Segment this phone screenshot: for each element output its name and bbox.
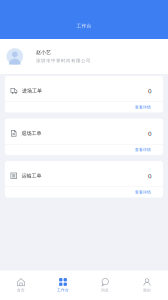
staticText: 我的	[143, 288, 151, 292]
staticText: 消息	[101, 288, 109, 292]
staticText: 深圳市中誉时尚有限公司	[36, 58, 91, 64]
staticText: 查看详情	[135, 105, 151, 110]
button[interactable]: 运输工单	[5, 161, 163, 197]
staticText: 工作台	[57, 288, 69, 292]
staticText: 运输工单	[21, 173, 41, 179]
button[interactable]: 消息	[84, 270, 126, 300]
staticText: 0	[148, 172, 152, 180]
staticText: 赵小艺	[36, 49, 51, 55]
staticText: 0	[148, 87, 152, 95]
button[interactable]: 我的	[126, 270, 168, 300]
button[interactable]: 退场工单	[5, 118, 163, 155]
button[interactable]: 工作台	[42, 270, 84, 300]
staticText: 工作台	[76, 23, 91, 29]
staticText: 查看详情	[135, 190, 151, 195]
staticText: 查看详情	[135, 147, 151, 152]
button[interactable]: 进场工单	[5, 76, 163, 112]
staticText: 退场工单	[21, 130, 41, 136]
staticText: 进场工单	[22, 88, 42, 94]
button[interactable]: 首页	[0, 270, 42, 300]
staticText: 首页	[17, 288, 25, 292]
staticText: 0	[148, 129, 152, 137]
